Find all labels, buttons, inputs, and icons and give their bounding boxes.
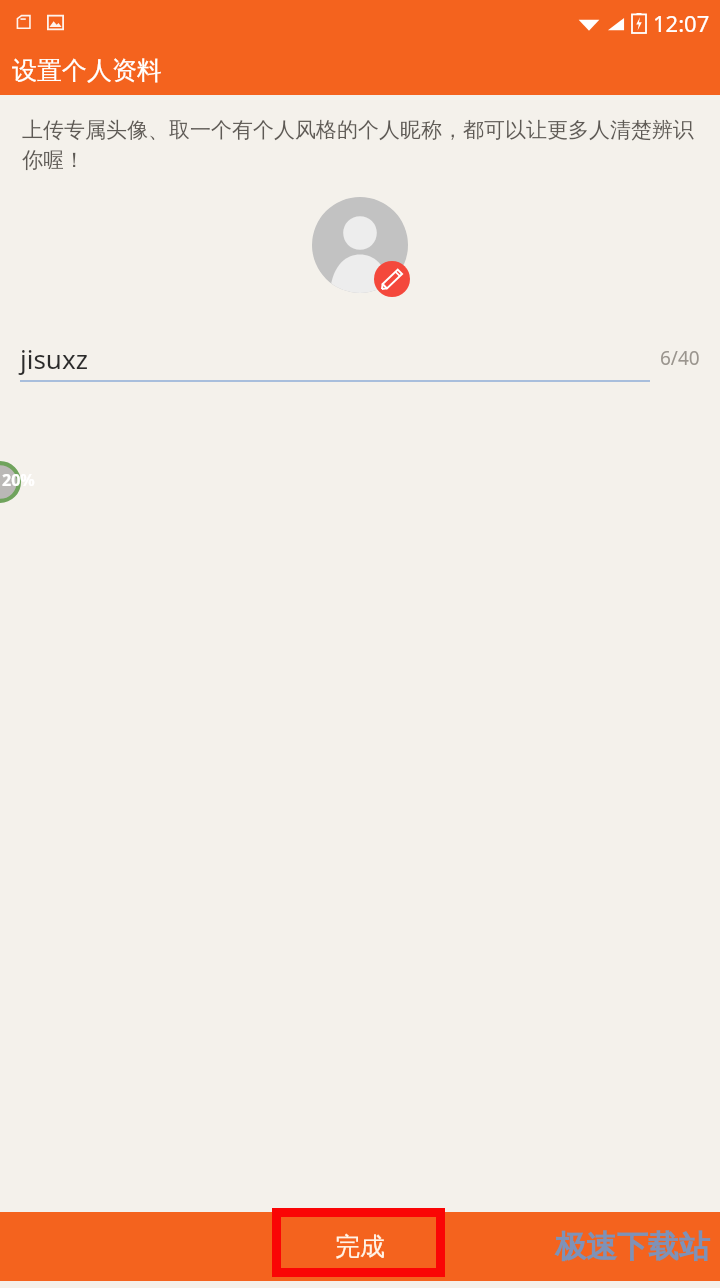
staticText: 极速下载站	[555, 1227, 710, 1266]
button[interactable]: jisuxz	[0, 327, 720, 389]
staticText: 20%	[2, 469, 35, 491]
staticText: 12:07	[653, 8, 710, 38]
staticText: 6/40	[660, 345, 700, 371]
button[interactable]: Change profile photo	[306, 197, 414, 305]
button[interactable]: 完成	[0, 1212, 720, 1281]
staticText: 完成	[335, 1231, 385, 1262]
staticText: jisuxz	[20, 341, 88, 376]
staticText: 设置个人资料	[12, 55, 162, 86]
staticText: 上传专属头像、取一个有个人风格的个人昵称，都可以让更多人清楚辨识你喔！	[22, 117, 698, 174]
